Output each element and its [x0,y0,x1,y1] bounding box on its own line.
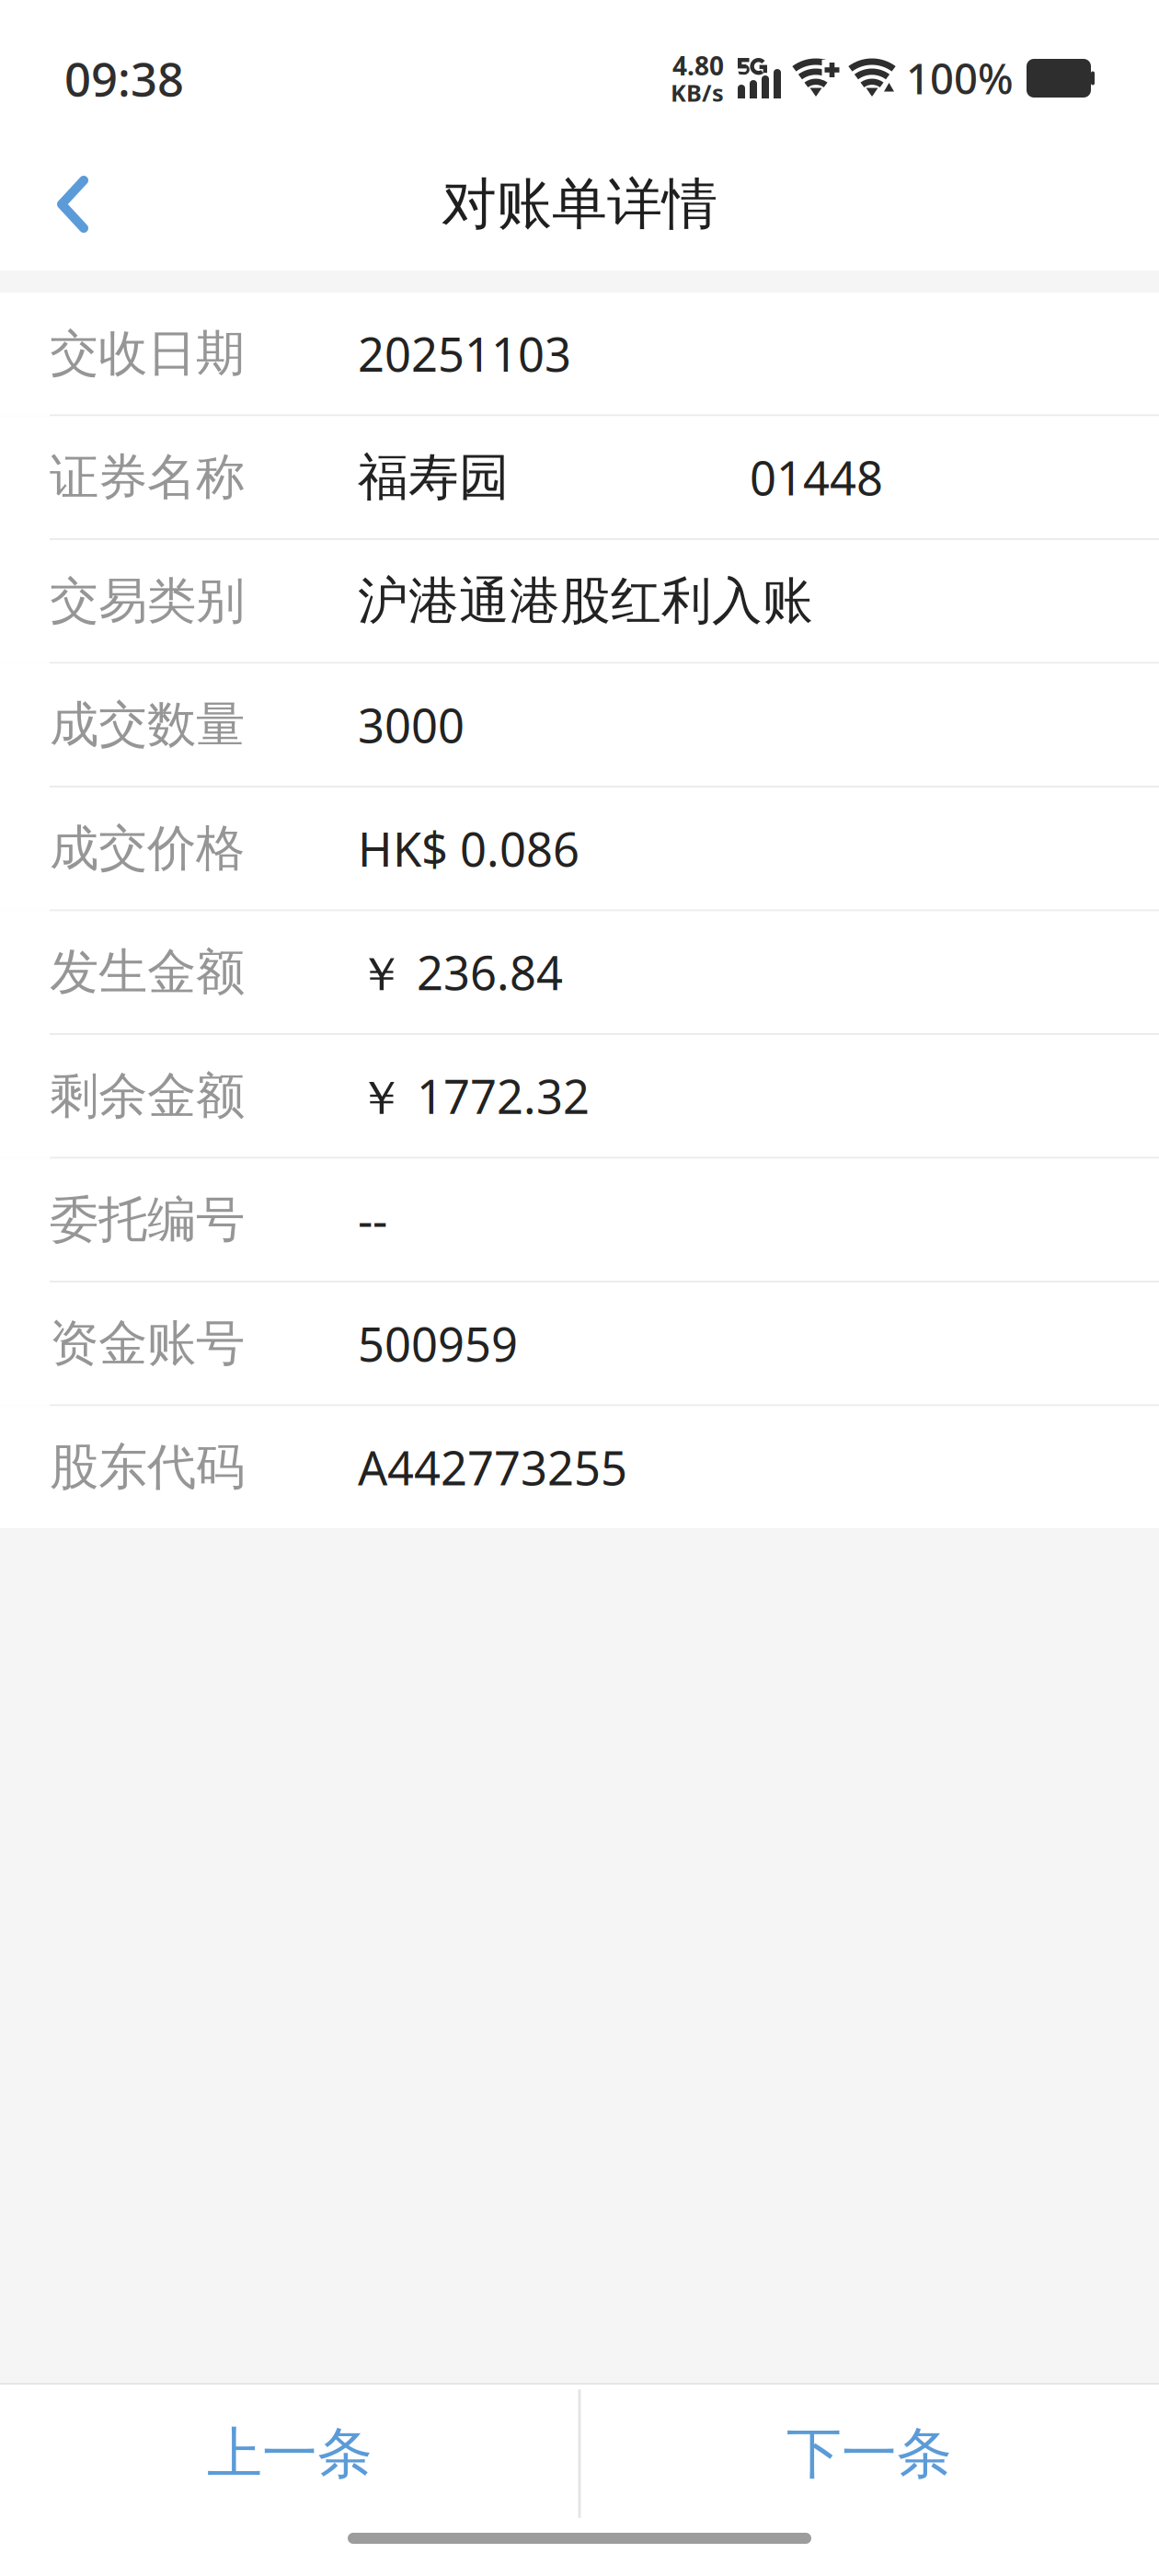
staticText: 剩余金额 [50,1066,245,1126]
staticText: 20251103 [358,323,571,384]
staticText: 500959 [358,1312,518,1374]
button[interactable]: Back [0,159,147,249]
staticText: 证券名称 [50,447,245,507]
staticText: 成交价格 [50,818,245,879]
staticText: 上一条 [207,2420,373,2488]
staticText: 委托编号 [50,1190,245,1250]
staticText: 沪港通港股红利入账 [358,570,813,632]
staticText: 交收日期 [50,323,245,384]
staticText: 福寿园 [358,446,510,508]
button[interactable]: 下一条 [579,2385,1159,2523]
staticText: 09:38 [64,47,184,109]
staticText: 3000 [358,694,465,756]
staticText: A442773255 [358,1436,627,1498]
staticText: 100% [906,51,1014,106]
staticText: 成交数量 [50,695,245,755]
staticText: 4.80 [672,48,724,83]
button[interactable]: 上一条 [0,2385,579,2523]
staticText: 发生金额 [50,942,245,1002]
staticText: 对账单详情 [442,170,717,238]
staticText: 股东代码 [50,1437,245,1497]
staticText: ￥ 236.84 [358,941,563,1003]
staticText: 01448 [750,446,883,508]
staticText: ￥ 1772.32 [358,1065,590,1127]
staticText: 资金账号 [50,1313,245,1374]
staticText: KB/s [671,77,724,108]
staticText: -- [358,1189,387,1251]
staticText: 下一条 [786,2420,952,2488]
staticText: 交易类别 [50,571,245,631]
staticText: HK$ 0.086 [358,818,579,879]
